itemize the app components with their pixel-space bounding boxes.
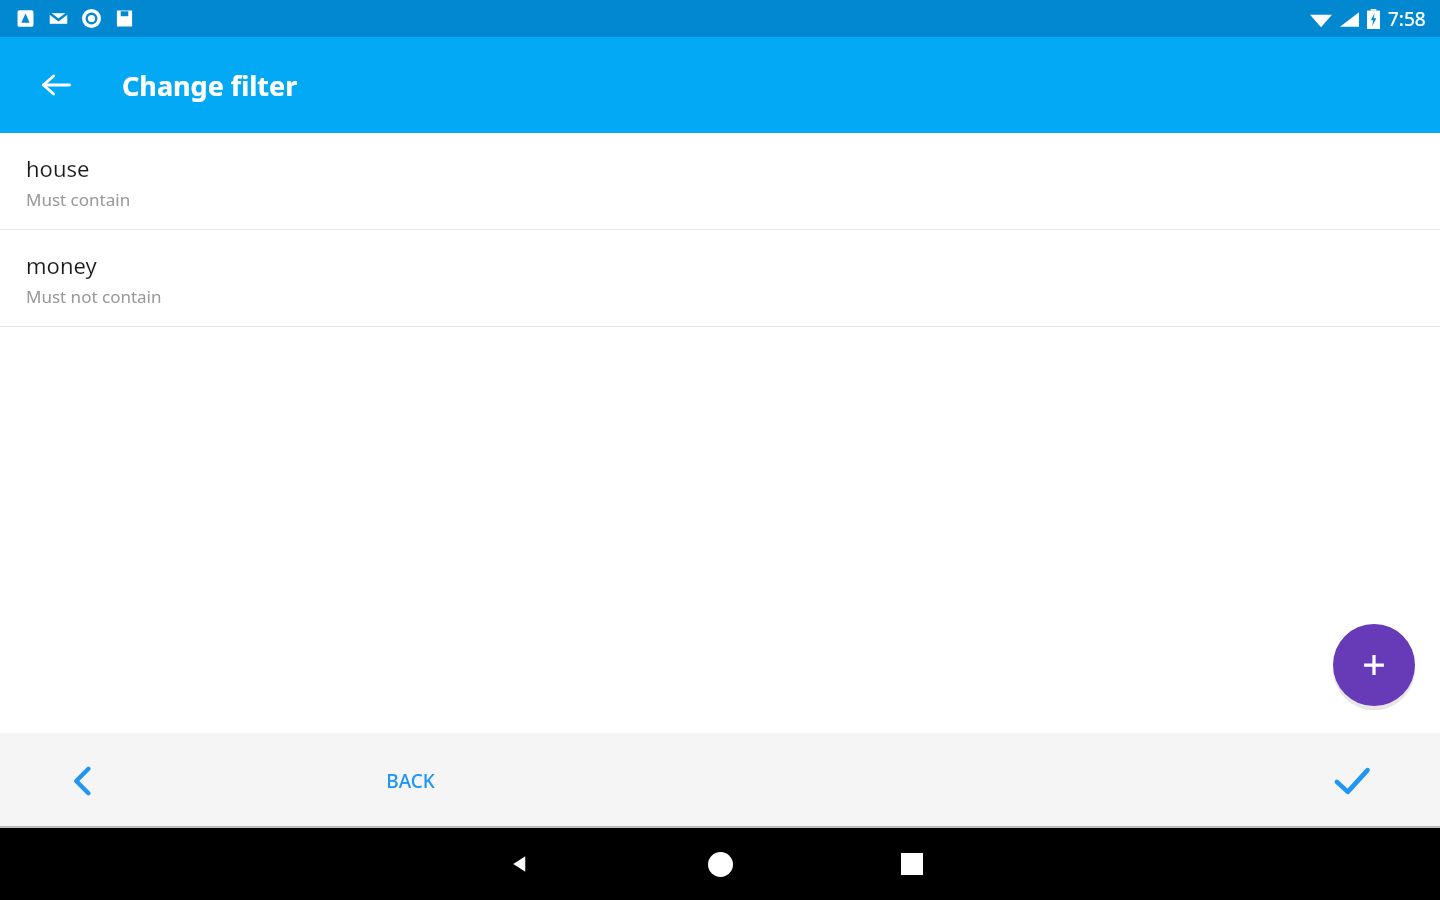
button[interactable]: Back <box>492 836 548 892</box>
button[interactable]: Add filter <box>1333 624 1415 706</box>
staticText: Must contain <box>26 188 131 211</box>
staticText: house <box>26 153 90 183</box>
button[interactable]: BACK <box>340 750 480 812</box>
staticText: 7:58 <box>1388 6 1426 32</box>
staticText: BACK <box>386 768 435 794</box>
button[interactable]: house <box>0 133 1440 229</box>
button[interactable]: Confirm <box>1319 748 1385 814</box>
button[interactable]: Back <box>28 57 84 113</box>
staticText: money <box>26 250 97 280</box>
staticText: Must not contain <box>26 285 162 308</box>
button[interactable]: Home <box>692 836 748 892</box>
button[interactable]: money <box>0 230 1440 326</box>
button[interactable]: Previous <box>52 750 114 812</box>
button[interactable]: Recents <box>884 836 940 892</box>
staticText: Change filter <box>122 67 298 104</box>
